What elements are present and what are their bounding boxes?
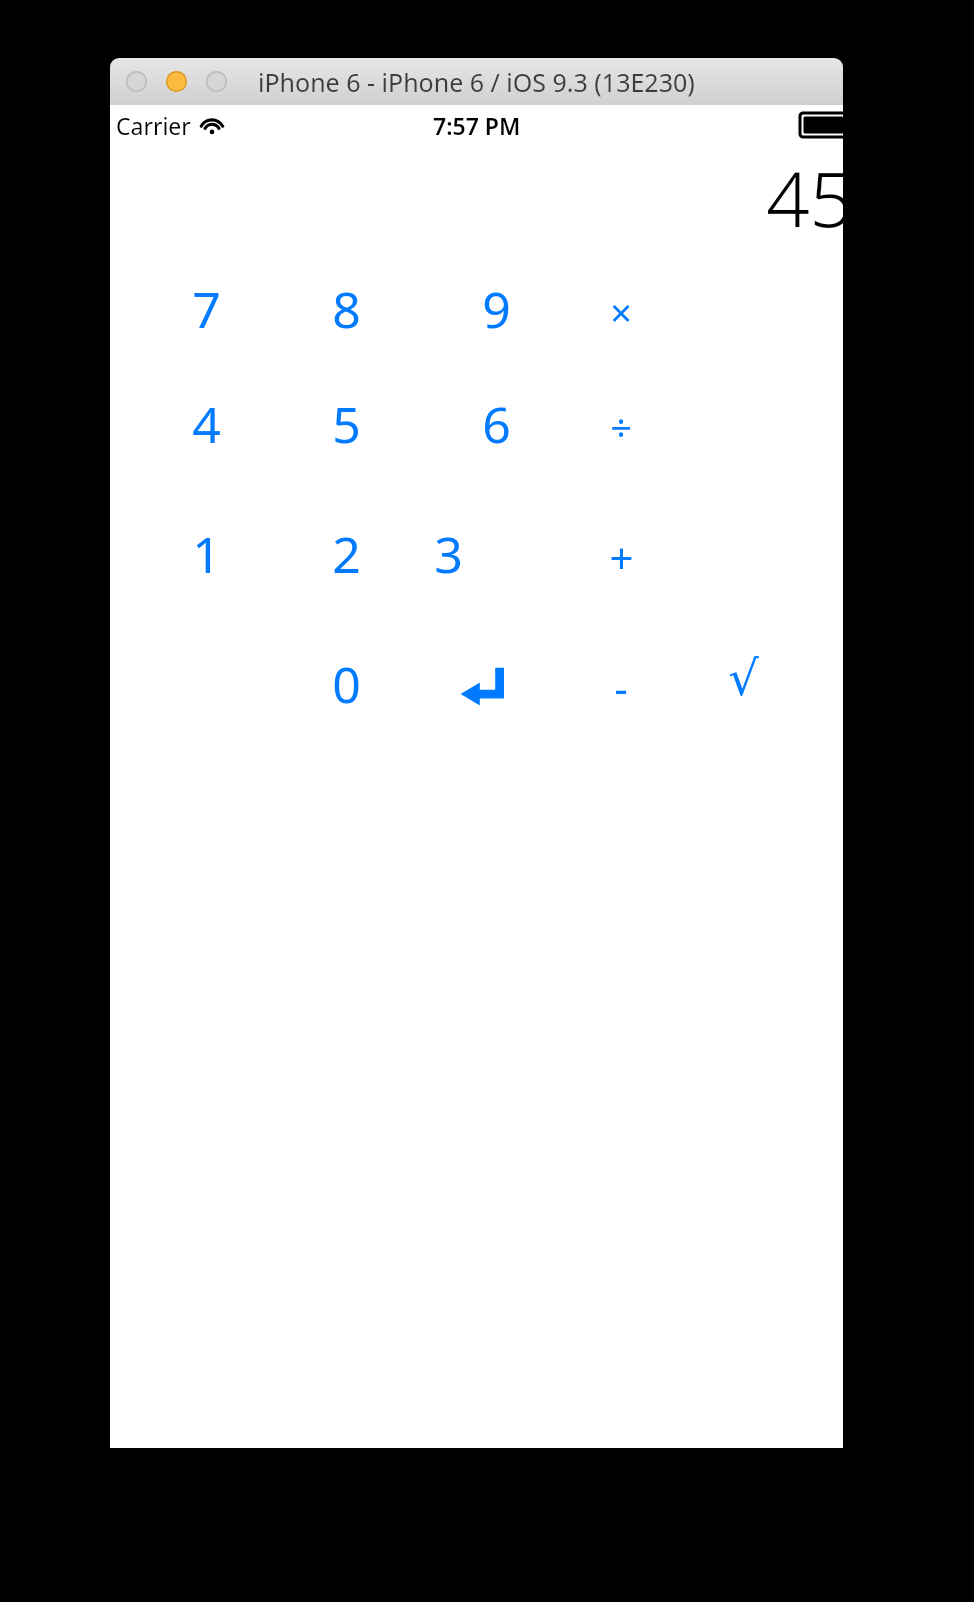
button[interactable]: + — [585, 526, 657, 588]
staticText: 9 — [482, 275, 511, 337]
button[interactable]: Enter — [448, 659, 520, 715]
button[interactable]: Close — [126, 71, 147, 92]
button[interactable]: 1 — [170, 520, 242, 582]
button[interactable]: - — [585, 656, 657, 718]
button[interactable]: √ — [707, 647, 779, 709]
staticText: 5 — [332, 390, 361, 452]
button[interactable]: 2 — [310, 520, 382, 582]
staticText: 7 — [192, 275, 221, 337]
staticText: 4 — [192, 390, 221, 452]
staticText: + — [609, 529, 634, 586]
staticText: 2 — [332, 520, 361, 582]
button[interactable]: 7 — [170, 275, 242, 337]
other: Battery — [800, 113, 852, 137]
staticText: 7:57 PM — [433, 110, 521, 141]
button[interactable]: × — [585, 281, 657, 343]
button[interactable]: 4 — [170, 390, 242, 452]
button[interactable]: ÷ — [585, 396, 657, 458]
staticText: 0 — [332, 650, 361, 712]
staticText: ÷ — [610, 401, 632, 453]
staticText: iPhone 6 - iPhone 6 / iOS 9.3 (13E230) — [258, 65, 695, 99]
staticText: 45 — [766, 146, 853, 250]
staticText: Carrier — [116, 110, 191, 141]
button[interactable]: 6 — [460, 390, 532, 452]
staticText: 8 — [332, 275, 361, 337]
staticText: √ — [728, 650, 759, 706]
staticText: 6 — [482, 390, 511, 452]
button[interactable]: 3 — [412, 520, 484, 582]
staticText: - — [614, 659, 628, 716]
button[interactable]: 9 — [460, 275, 532, 337]
staticText: 1 — [192, 520, 221, 582]
button[interactable]: Minimize — [166, 71, 187, 92]
button[interactable]: 8 — [310, 275, 382, 337]
other: Wi-Fi — [199, 116, 225, 136]
button[interactable]: Zoom — [206, 71, 227, 92]
button[interactable]: 5 — [310, 390, 382, 452]
staticText: 3 — [434, 520, 463, 582]
button[interactable]: 0 — [310, 650, 382, 712]
staticText: × — [610, 286, 632, 338]
